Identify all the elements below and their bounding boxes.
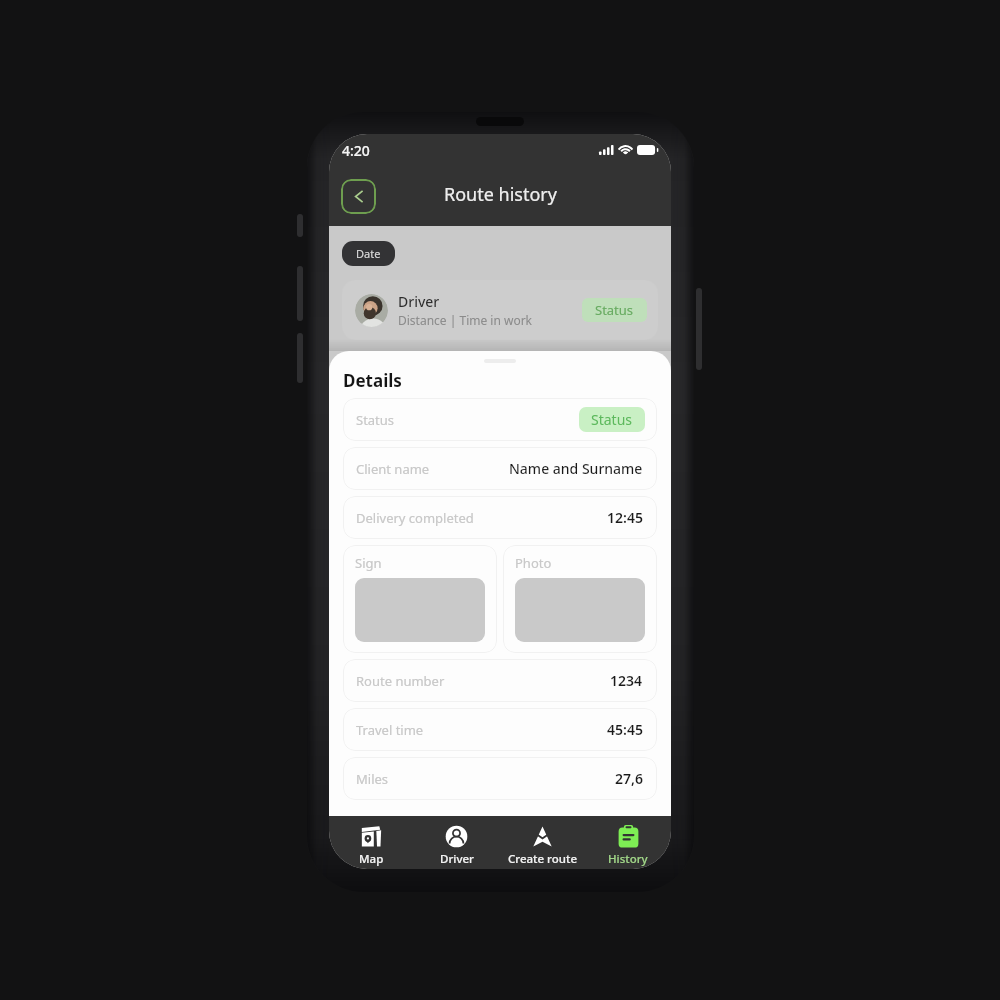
staticText: Client name (356, 460, 430, 478)
button[interactable]: Sign (343, 545, 497, 653)
staticText: Sign (355, 554, 382, 572)
button[interactable]: Driver (414, 816, 499, 869)
staticText: Status (595, 301, 634, 319)
staticText: Driver (398, 292, 440, 311)
staticText: Date (356, 246, 381, 261)
staticText: Route number (356, 672, 445, 690)
button[interactable]: Miles (343, 757, 657, 800)
staticText: 27,6 (615, 769, 643, 788)
staticText: Travel time (356, 721, 424, 739)
button[interactable]: Client name (343, 447, 657, 490)
staticText: Map (359, 851, 384, 867)
button[interactable]: Driver (342, 280, 658, 340)
staticText: Delivery completed (356, 509, 474, 527)
staticText: Status (356, 411, 395, 429)
button[interactable]: Create route (499, 816, 585, 869)
button[interactable]: Map (329, 816, 414, 869)
staticText: Driver (440, 851, 474, 867)
staticText: History (608, 851, 648, 867)
staticText: 1234 (610, 671, 643, 690)
staticText: Miles (356, 770, 389, 788)
button[interactable]: History (585, 816, 671, 869)
staticText: Distance | Time in work (398, 312, 533, 328)
staticText: Create route (508, 851, 577, 867)
button[interactable]: Delivery completed (343, 496, 657, 539)
button[interactable]: Back (341, 179, 376, 214)
staticText: Status (591, 410, 633, 429)
staticText: Name and Surname (509, 459, 643, 478)
staticText: 4:20 (342, 141, 370, 160)
button[interactable]: Date (342, 241, 395, 266)
button[interactable]: Photo (503, 545, 657, 653)
staticText: Photo (515, 554, 552, 572)
button[interactable]: Travel time (343, 708, 657, 751)
button[interactable]: Route number (343, 659, 657, 702)
button[interactable]: Status (343, 398, 657, 441)
staticText: 12:45 (607, 508, 643, 527)
staticText: Route history (444, 182, 557, 207)
staticText: 45:45 (607, 720, 643, 739)
staticText: Details (343, 369, 402, 392)
